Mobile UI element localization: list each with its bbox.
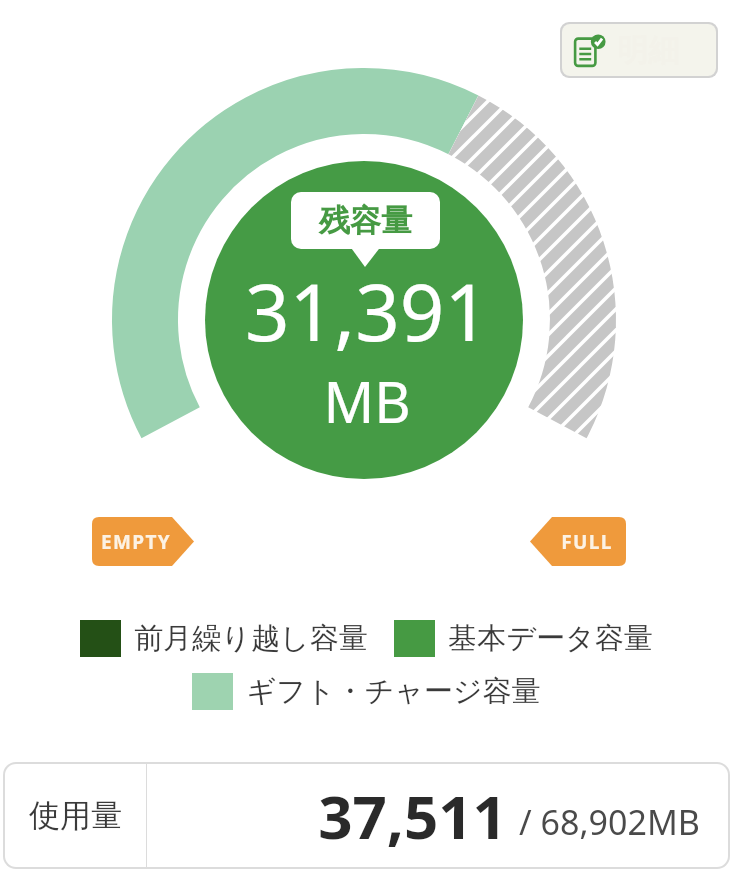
staticText: EMPTY xyxy=(101,529,171,555)
button[interactable]: ギフト・チャージ容量 xyxy=(192,673,541,710)
staticText: 使用量 xyxy=(29,796,122,835)
staticText: MB xyxy=(323,363,411,439)
button[interactable]: 前月繰り越し容量 xyxy=(80,620,368,657)
button[interactable]: EMPTY xyxy=(92,517,180,566)
staticText: 前月繰り越し容量 xyxy=(134,620,368,657)
staticText: FULL xyxy=(561,529,613,555)
staticText: 31,391 xyxy=(245,258,489,364)
staticText: 37,511 xyxy=(318,775,507,857)
button[interactable]: 明細 Details xyxy=(562,24,716,76)
staticText: 残容量 xyxy=(319,201,412,240)
staticText: 基本データ容量 xyxy=(448,620,653,657)
button[interactable]: 使用量 xyxy=(5,764,728,867)
staticText: / 68,902MB xyxy=(519,799,700,845)
staticText: ギフト・チャージ容量 xyxy=(246,673,541,710)
button[interactable]: FULL xyxy=(546,517,628,566)
button[interactable]: 基本データ容量 xyxy=(394,620,653,657)
